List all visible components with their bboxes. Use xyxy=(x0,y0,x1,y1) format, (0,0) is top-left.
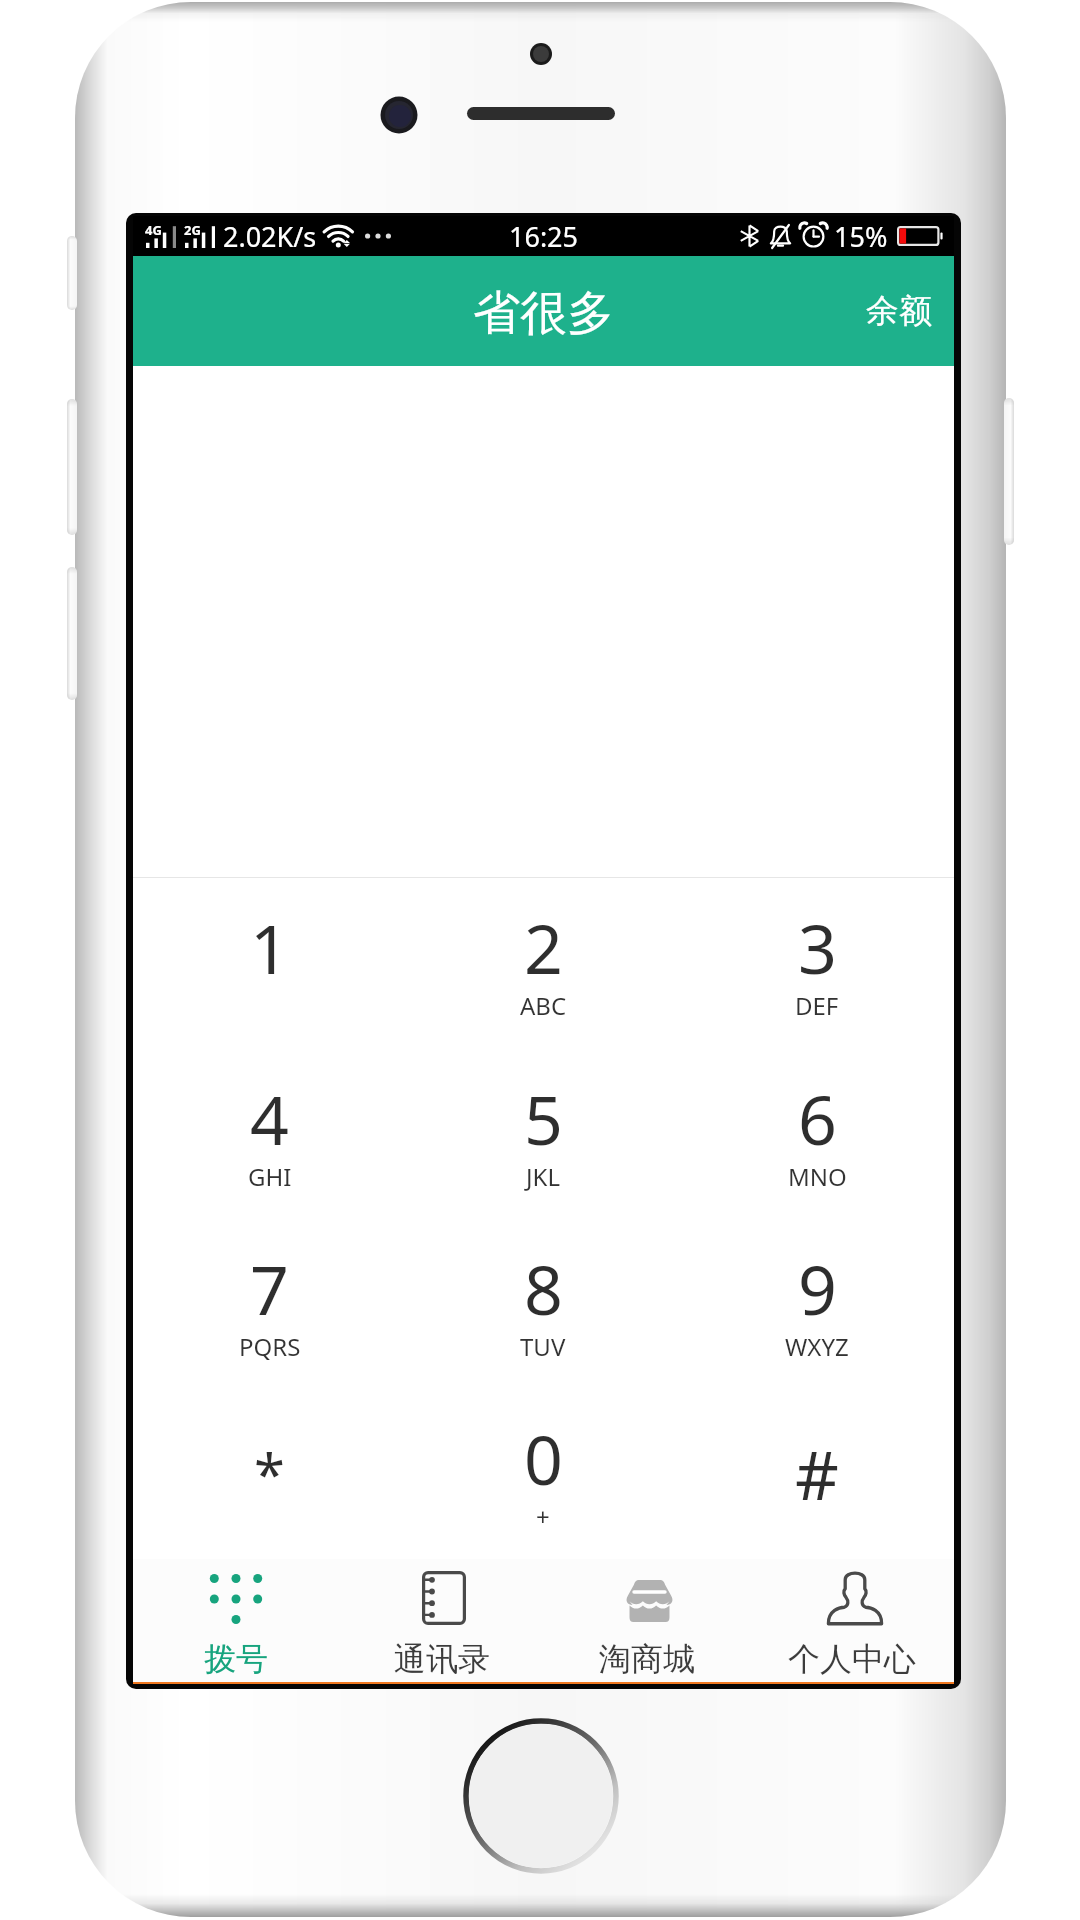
button[interactable]: 4 xyxy=(133,1049,406,1219)
staticText: # xyxy=(795,1427,839,1520)
staticText: JKL xyxy=(526,1160,560,1193)
button[interactable]: Mall xyxy=(544,1559,749,1682)
staticText: 2 xyxy=(524,901,563,994)
staticText: 1 xyxy=(250,901,289,994)
staticText: 15% xyxy=(834,218,888,255)
staticText: PQRS xyxy=(239,1330,301,1363)
button[interactable]: 7 xyxy=(133,1219,406,1389)
other: Profile xyxy=(827,1570,883,1626)
staticText: 9 xyxy=(798,1242,837,1335)
button[interactable]: 9 xyxy=(680,1219,954,1389)
button[interactable]: Dialer xyxy=(133,1559,339,1682)
staticText: 个人中心 xyxy=(788,1639,916,1679)
button[interactable]: * xyxy=(133,1389,406,1559)
staticText: 4G xyxy=(145,221,162,239)
staticText: + xyxy=(536,1500,550,1533)
staticText: 余额 xyxy=(866,290,932,332)
staticText: 16:25 xyxy=(509,218,579,255)
button[interactable]: 3 xyxy=(680,878,954,1049)
other: Mall xyxy=(626,1580,673,1622)
staticText: MNO xyxy=(788,1160,847,1193)
button[interactable]: 余额 xyxy=(844,270,954,352)
staticText: 省很多 xyxy=(473,284,614,343)
staticText: 0 xyxy=(524,1412,563,1505)
staticText: GHI xyxy=(248,1160,292,1193)
staticText: 2.02K/s xyxy=(223,218,317,255)
button[interactable]: # xyxy=(680,1389,954,1559)
staticText: 6 xyxy=(798,1072,837,1165)
button[interactable]: 5 xyxy=(406,1049,680,1219)
staticText: 淘商城 xyxy=(599,1639,695,1679)
button[interactable]: 1 xyxy=(133,878,406,1049)
staticText: 8 xyxy=(524,1242,563,1335)
other: Contacts xyxy=(422,1571,466,1625)
button[interactable]: Contacts xyxy=(339,1559,544,1682)
staticText: 通讯录 xyxy=(394,1639,490,1679)
other: Dialer xyxy=(209,1572,263,1626)
staticText: 5 xyxy=(524,1072,563,1165)
staticText: 2G xyxy=(184,221,201,239)
button[interactable]: 8 xyxy=(406,1219,680,1389)
staticText: ABC xyxy=(520,989,567,1022)
staticText: 7 xyxy=(250,1242,289,1335)
button[interactable]: 6 xyxy=(680,1049,954,1219)
button[interactable]: 2 xyxy=(406,878,680,1049)
staticText: DEF xyxy=(795,989,839,1022)
staticText: 拨号 xyxy=(204,1639,268,1679)
staticText: WXYZ xyxy=(785,1330,849,1363)
button[interactable]: Profile xyxy=(749,1559,954,1682)
staticText: 3 xyxy=(798,901,837,994)
staticText: TUV xyxy=(520,1330,566,1363)
button[interactable]: 0 xyxy=(406,1389,680,1559)
staticText: 4 xyxy=(250,1072,289,1165)
staticText: * xyxy=(254,1435,285,1511)
